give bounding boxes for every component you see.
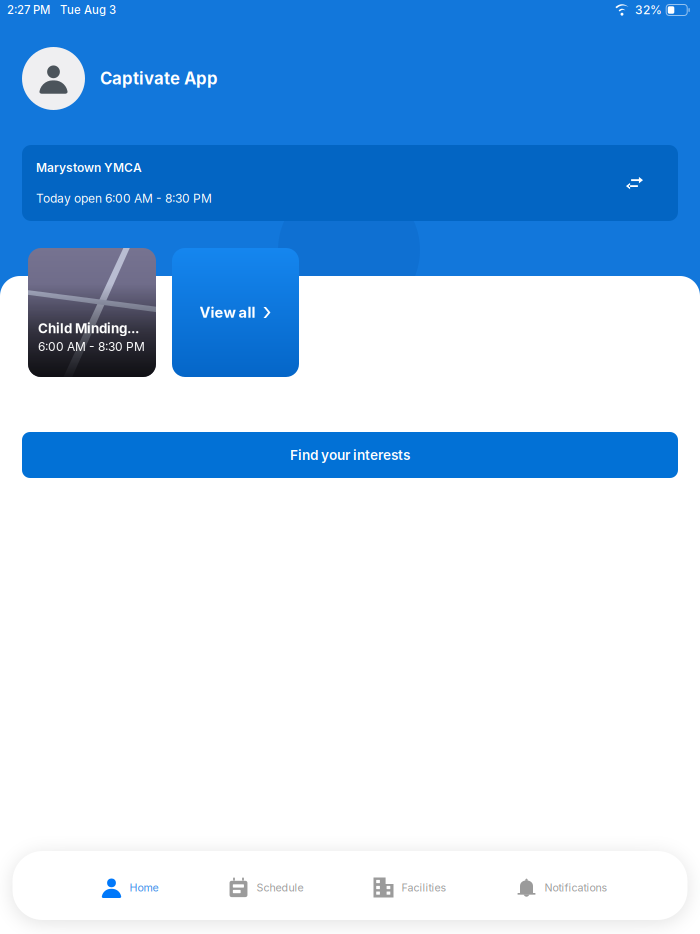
button[interactable]: Child Minding... [28, 248, 156, 377]
button[interactable]: Facilities [373, 851, 446, 920]
button[interactable]: Notifications [516, 851, 607, 920]
staticText: 32% [635, 3, 662, 17]
staticText: Schedule [256, 881, 303, 894]
staticText: Child Minding... [38, 320, 139, 336]
button[interactable]: Find your interests [22, 432, 678, 478]
staticText: Tue Aug 3 [60, 3, 116, 17]
button[interactable]: Profile [22, 47, 85, 110]
button[interactable]: Schedule [228, 851, 303, 920]
staticText: Find your interests [290, 447, 410, 463]
staticText: Notifications [544, 881, 607, 894]
button[interactable]: View all [172, 248, 299, 377]
staticText: Captivate App [100, 68, 218, 89]
staticText: 6:00 AM - 8:30 PM [38, 339, 145, 354]
staticText: View all [200, 304, 256, 321]
staticText: Home [129, 881, 158, 894]
staticText: Facilities [401, 881, 446, 894]
button[interactable]: Home [101, 851, 158, 920]
staticText: Marystown YMCA [36, 160, 142, 175]
staticText: Today open 6:00 AM - 8:30 PM [36, 191, 212, 205]
staticText: 2:27 PM [7, 3, 50, 17]
button[interactable]: Marystown YMCA [22, 145, 678, 221]
